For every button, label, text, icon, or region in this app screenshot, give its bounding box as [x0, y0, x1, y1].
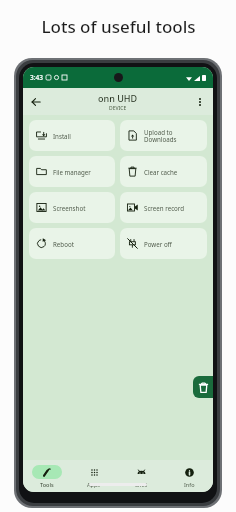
button[interactable]: More options [191, 93, 209, 111]
staticText: Apps [87, 481, 100, 488]
staticText: Lots of useful tools [41, 15, 196, 38]
staticText: Info [184, 481, 195, 488]
staticText: Tools [40, 481, 54, 488]
staticText: File manager [53, 168, 91, 176]
staticText: Clear cache [144, 168, 178, 176]
staticText: Reboot [53, 240, 74, 248]
button[interactable]: Tools [23, 460, 70, 492]
staticText: Screen record [144, 204, 185, 212]
button[interactable]: Back [27, 93, 45, 111]
button[interactable]: Reboot [29, 228, 115, 259]
button[interactable]: Upload to Downloads [120, 120, 207, 151]
button[interactable]: Clear cache [120, 156, 207, 187]
staticText: Shell [135, 481, 148, 488]
button[interactable]: Install [29, 120, 115, 151]
button[interactable]: Apps [70, 460, 117, 492]
staticText: 3:43 [30, 73, 43, 82]
button[interactable]: Screenshot [29, 192, 115, 223]
button[interactable]: Power off [120, 228, 207, 259]
button[interactable]: File manager [29, 156, 115, 187]
staticText: Upload to Downloads [144, 128, 177, 144]
button[interactable]: Screen record [120, 192, 207, 223]
button[interactable]: Info [165, 460, 213, 492]
staticText: onn UHD [98, 92, 138, 104]
staticText: Install [53, 132, 71, 140]
button[interactable]: Delete [193, 376, 213, 398]
staticText: Power off [144, 240, 172, 248]
button[interactable]: Shell [117, 460, 165, 492]
staticText: DEVICE [109, 105, 127, 112]
staticText: Screenshot [53, 204, 86, 212]
